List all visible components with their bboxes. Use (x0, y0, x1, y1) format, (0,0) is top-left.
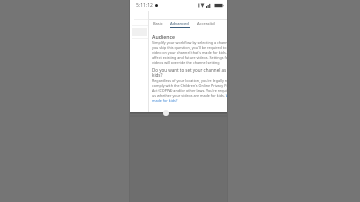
staticText: Audience (152, 33, 176, 40)
staticText: Simplify your workflow by selecting a ch… (152, 40, 227, 65)
staticText: Advanced settings (170, 21, 190, 26)
staticText: Basic info (153, 21, 164, 26)
button[interactable]: Accessibility (197, 21, 215, 28)
staticText: 5:11:12 (136, 2, 153, 9)
button[interactable]: Expand sheet (163, 110, 169, 116)
staticText: Accessibility (197, 21, 215, 26)
button[interactable]: Advanced settings (170, 21, 190, 28)
button[interactable]: Basic info (153, 21, 164, 28)
staticText: Regardless of your location, you're lega… (152, 78, 227, 103)
staticText: Do you want to set your channel as made … (152, 67, 227, 78)
